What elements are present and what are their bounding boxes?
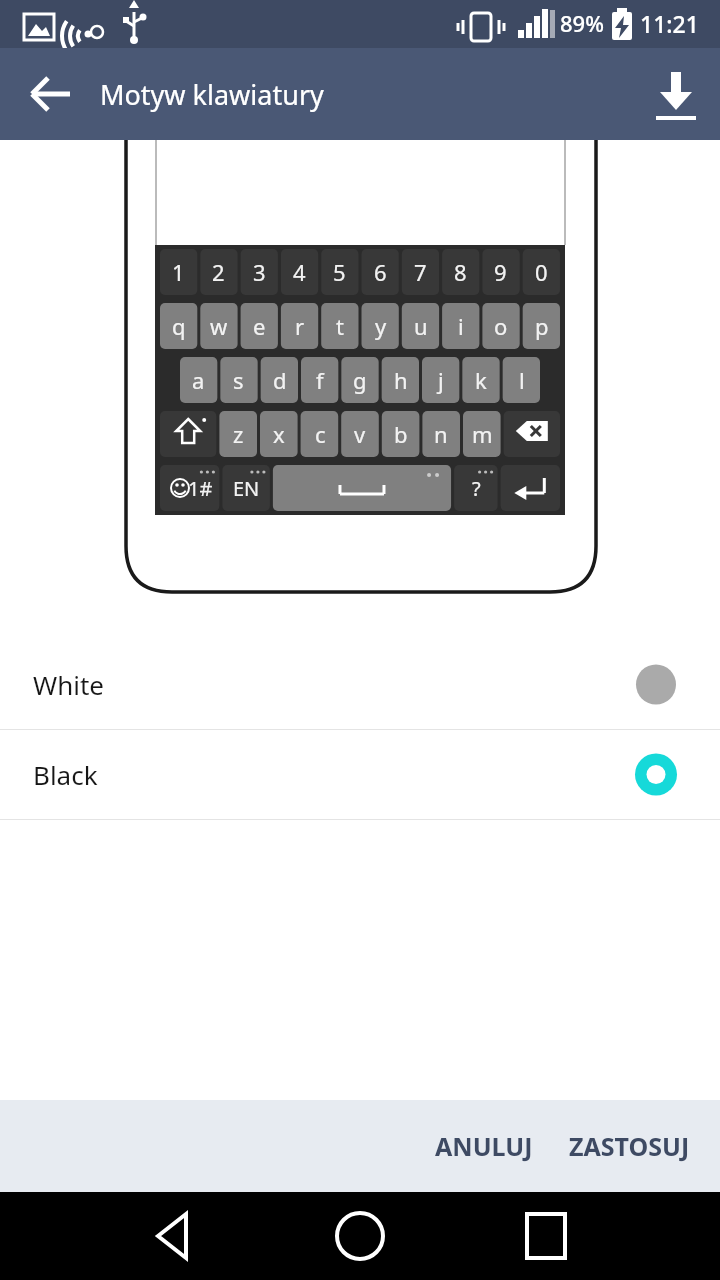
staticText: 3 <box>253 257 266 287</box>
button[interactable]: s <box>220 357 257 403</box>
button[interactable]: Recents <box>502 1192 590 1280</box>
button[interactable]: 5 <box>321 249 358 295</box>
button[interactable]: Download <box>640 58 712 130</box>
button[interactable]: EN <box>222 465 270 511</box>
staticText: z <box>233 419 244 449</box>
button[interactable]: ZASTOSUJ <box>553 1113 720 1179</box>
staticText: 89% <box>560 8 604 38</box>
staticText: p <box>535 311 549 341</box>
staticText: 5 <box>333 257 346 287</box>
button[interactable]: y <box>362 303 399 349</box>
button[interactable]: 9 <box>482 249 519 295</box>
staticText: 2 <box>212 257 225 287</box>
staticText: g <box>353 365 367 395</box>
button[interactable]: 1# <box>160 465 219 511</box>
button[interactable]: d <box>261 357 298 403</box>
staticText: 1# <box>188 475 213 502</box>
button[interactable]: l <box>503 357 540 403</box>
button[interactable]: h <box>382 357 419 403</box>
button[interactable]: j <box>422 357 459 403</box>
button[interactable]: x <box>260 411 298 457</box>
staticText: 6 <box>374 257 387 287</box>
button[interactable]: g <box>341 357 378 403</box>
button[interactable]: n <box>422 411 460 457</box>
button[interactable]: 2 <box>200 249 237 295</box>
button[interactable]: ? <box>454 465 498 511</box>
staticText: c <box>315 419 326 449</box>
button[interactable]: ANULUJ <box>415 1113 553 1179</box>
button[interactable]: w <box>200 303 237 349</box>
staticText: White <box>33 667 105 702</box>
button[interactable]: White <box>0 640 720 729</box>
button[interactable]: u <box>402 303 439 349</box>
staticText: m <box>472 419 493 449</box>
staticText: s <box>233 365 244 395</box>
staticText: v <box>354 419 366 449</box>
button[interactable]: Black <box>0 730 720 819</box>
staticText: a <box>192 365 205 395</box>
staticText: 0 <box>535 257 548 287</box>
staticText: 8 <box>454 257 467 287</box>
button[interactable]: 8 <box>442 249 479 295</box>
staticText: u <box>414 311 428 341</box>
staticText: t <box>336 311 344 341</box>
staticText: w <box>210 311 228 341</box>
button[interactable]: 3 <box>241 249 278 295</box>
staticText: 7 <box>414 257 427 287</box>
staticText: e <box>253 311 266 341</box>
button[interactable]: b <box>382 411 420 457</box>
staticText: ? <box>472 475 481 502</box>
staticText: i <box>458 311 464 341</box>
staticText: ANULUJ <box>435 1129 533 1163</box>
staticText: y <box>375 311 387 341</box>
staticText: ZASTOSUJ <box>569 1129 690 1163</box>
staticText: q <box>172 311 186 341</box>
button[interactable]: 1 <box>160 249 197 295</box>
button[interactable]: p <box>523 303 560 349</box>
staticText: 4 <box>293 257 306 287</box>
button[interactable]: Home <box>316 1192 404 1280</box>
button[interactable]: 4 <box>281 249 318 295</box>
button[interactable]: Back <box>130 1192 218 1280</box>
button[interactable]: z <box>219 411 257 457</box>
button[interactable]: a <box>180 357 217 403</box>
staticText: 1 <box>172 257 185 287</box>
button[interactable]: q <box>160 303 197 349</box>
button[interactable]: o <box>482 303 519 349</box>
button[interactable]: 6 <box>362 249 399 295</box>
button[interactable]: r <box>281 303 318 349</box>
staticText: Motyw klawiatury <box>100 76 324 113</box>
staticText: b <box>394 419 408 449</box>
button[interactable]: c <box>301 411 339 457</box>
staticText: f <box>316 365 324 395</box>
staticText: Black <box>33 757 98 792</box>
staticText: r <box>295 311 305 341</box>
staticText: 11:21 <box>640 8 699 39</box>
button[interactable]: f <box>301 357 338 403</box>
staticText: j <box>438 365 444 395</box>
button[interactable]: 7 <box>402 249 439 295</box>
button[interactable]: 0 <box>523 249 560 295</box>
button[interactable]: i <box>442 303 479 349</box>
button[interactable]: m <box>463 411 501 457</box>
staticText: EN <box>233 475 260 502</box>
staticText: n <box>434 419 448 449</box>
staticText: h <box>394 365 408 395</box>
button[interactable]: Back <box>8 58 80 130</box>
staticText: l <box>519 365 525 395</box>
button[interactable]: t <box>321 303 358 349</box>
staticText: d <box>273 365 287 395</box>
button[interactable]: v <box>341 411 379 457</box>
button[interactable]: e <box>241 303 278 349</box>
staticText: o <box>494 311 508 341</box>
staticText: k <box>475 365 487 395</box>
staticText: 9 <box>494 257 507 287</box>
staticText: x <box>273 419 285 449</box>
button[interactable]: k <box>462 357 499 403</box>
